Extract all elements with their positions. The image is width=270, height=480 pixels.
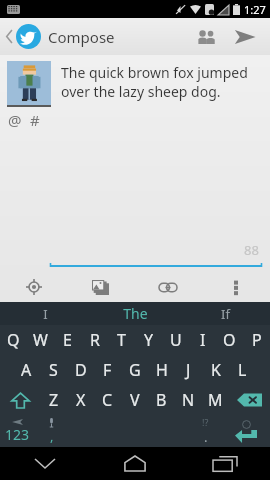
staticText: P xyxy=(252,329,262,351)
button[interactable]: E xyxy=(54,325,81,355)
button[interactable]: G xyxy=(121,355,148,385)
staticText: W xyxy=(33,329,48,351)
staticText: L xyxy=(238,359,247,381)
button[interactable]: C xyxy=(94,385,121,415)
staticText: I xyxy=(43,305,48,323)
staticText: C xyxy=(102,389,113,411)
button[interactable]: X xyxy=(67,385,94,415)
staticText: S xyxy=(49,359,58,381)
button[interactable]: M xyxy=(202,385,229,415)
staticText: 123 xyxy=(5,425,30,444)
staticText: K xyxy=(211,359,221,381)
button[interactable]: N xyxy=(175,385,202,415)
button[interactable]: Shift xyxy=(0,385,40,415)
staticText: Y xyxy=(144,329,154,351)
staticText: U xyxy=(170,329,182,351)
staticText: J xyxy=(186,359,191,381)
button[interactable]: The xyxy=(90,302,180,325)
button[interactable]: Backspace xyxy=(229,385,270,415)
staticText: H xyxy=(156,359,168,381)
button[interactable]: B xyxy=(148,385,175,415)
button[interactable]: More options xyxy=(202,274,270,300)
button[interactable]: R xyxy=(81,325,108,355)
staticText: @ xyxy=(8,110,22,130)
staticText: B xyxy=(156,389,167,411)
staticText: # xyxy=(30,110,40,130)
staticText: The quick brown fox jumped xyxy=(61,63,248,82)
staticText: E xyxy=(63,329,72,351)
staticText: G xyxy=(129,359,141,381)
button[interactable]: F xyxy=(94,355,121,385)
staticText: 88 xyxy=(244,241,259,259)
button[interactable]: Hide keyboard xyxy=(0,447,90,480)
staticText: D xyxy=(75,359,87,381)
button[interactable]: !? xyxy=(189,415,222,447)
button[interactable]: O xyxy=(216,325,243,355)
staticText: Compose xyxy=(48,27,115,47)
staticText: , xyxy=(50,427,54,445)
button[interactable]: Q xyxy=(0,325,27,355)
button[interactable]: If xyxy=(180,302,270,325)
staticText: M xyxy=(208,389,223,411)
button[interactable]: Recipients xyxy=(188,18,226,55)
staticText: F xyxy=(103,359,112,381)
staticText: Q xyxy=(7,329,20,351)
button[interactable]: I xyxy=(0,302,90,325)
staticText: !? xyxy=(202,416,209,428)
staticText: . xyxy=(204,428,208,446)
button[interactable]: Send xyxy=(226,18,264,55)
staticText: If xyxy=(221,305,230,323)
button[interactable]: Up xyxy=(4,20,117,53)
staticText: O xyxy=(223,329,236,351)
button[interactable]: P xyxy=(243,325,270,355)
other: Up xyxy=(6,30,13,43)
staticText: Z xyxy=(49,389,59,411)
button[interactable]: I xyxy=(189,325,216,355)
staticText: R xyxy=(90,329,100,351)
staticText: X xyxy=(76,389,86,411)
button[interactable]: 123 xyxy=(0,415,35,447)
button[interactable]: Z xyxy=(40,385,67,415)
button[interactable]: U xyxy=(162,325,189,355)
button[interactable]: K xyxy=(202,355,229,385)
staticText: T xyxy=(117,329,126,351)
button[interactable]: J xyxy=(175,355,202,385)
button[interactable]: S xyxy=(40,355,67,385)
button[interactable]: D xyxy=(67,355,94,385)
button[interactable]: A xyxy=(13,355,40,385)
staticText: The xyxy=(123,304,148,323)
button[interactable]: Recent apps xyxy=(180,447,270,480)
staticText: I xyxy=(200,329,206,351)
button[interactable]: L xyxy=(229,355,256,385)
button[interactable]: H xyxy=(148,355,175,385)
button[interactable]: Add location xyxy=(0,274,67,300)
button[interactable]: Voice input xyxy=(35,415,68,447)
staticText: N xyxy=(182,389,195,411)
button[interactable]: Add photo xyxy=(67,274,134,300)
button[interactable]: V xyxy=(121,385,148,415)
button[interactable]: W xyxy=(27,325,54,355)
button[interactable]: Home xyxy=(90,447,180,480)
staticText: A xyxy=(21,359,32,381)
button[interactable]: T xyxy=(108,325,135,355)
button[interactable]: Add link xyxy=(134,274,202,300)
staticText: V xyxy=(130,389,140,411)
button[interactable]: Enter xyxy=(222,415,270,447)
staticText: over the lazy sheep dog. xyxy=(61,82,221,101)
staticText: 1:27 xyxy=(244,2,266,17)
button[interactable]: Y xyxy=(135,325,162,355)
